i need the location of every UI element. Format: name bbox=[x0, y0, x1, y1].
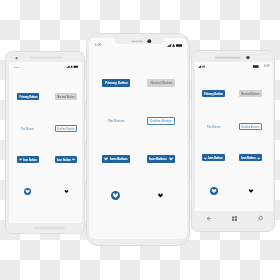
staticText: Outline Button bbox=[150, 119, 172, 123]
staticText: Primary Button bbox=[105, 81, 128, 85]
staticText: Icon Button bbox=[241, 156, 256, 160]
button[interactable]: Favorite bbox=[210, 187, 218, 195]
button[interactable]: Flat Button bbox=[202, 123, 225, 130]
staticText: Flat Button bbox=[108, 119, 125, 123]
button[interactable]: Outline Button bbox=[55, 125, 77, 132]
staticText: 6:00 bbox=[95, 43, 102, 47]
staticText: Icon Button bbox=[208, 156, 223, 160]
button[interactable]: Icon Button bbox=[55, 156, 77, 163]
button[interactable]: Outline Button bbox=[239, 123, 262, 130]
button[interactable]: Primary Button bbox=[102, 79, 130, 87]
button[interactable]: Favorite bbox=[24, 188, 31, 195]
button[interactable]: Icon Button bbox=[239, 154, 262, 161]
button[interactable]: Icon Button bbox=[202, 154, 225, 161]
staticText: Icon Button bbox=[149, 157, 167, 161]
button[interactable]: Flat Button bbox=[17, 125, 39, 132]
button[interactable]: Icon Button bbox=[147, 155, 175, 163]
button[interactable]: Icon Button bbox=[102, 155, 130, 163]
button[interactable]: Icon Button bbox=[17, 156, 39, 163]
button[interactable]: Like bbox=[156, 191, 165, 200]
staticText: 6:00 bbox=[14, 65, 19, 68]
button[interactable]: Outline Button bbox=[147, 117, 175, 125]
button[interactable]: Favorite bbox=[111, 191, 120, 200]
staticText: Icon Button bbox=[23, 158, 37, 161]
button[interactable]: Like bbox=[247, 187, 255, 195]
staticText: Primary Button bbox=[204, 92, 223, 96]
staticText: Flat Button bbox=[207, 125, 221, 129]
staticText: Primary Button bbox=[19, 95, 38, 98]
staticText: Outline Button bbox=[241, 125, 260, 129]
button[interactable]: System navigation bbox=[195, 211, 273, 229]
button[interactable]: Normal Button bbox=[239, 90, 262, 97]
staticText: Icon Button bbox=[57, 158, 71, 161]
staticText: Flat Button bbox=[21, 127, 35, 130]
button[interactable]: Primary Button bbox=[17, 93, 39, 100]
staticText: Icon Button bbox=[110, 157, 128, 161]
staticText: Normal Button bbox=[57, 95, 75, 98]
staticText: Normal Button bbox=[241, 92, 260, 96]
button[interactable]: Flat Button bbox=[102, 117, 130, 125]
staticText: 6:00 bbox=[264, 64, 270, 68]
button[interactable]: Normal Button bbox=[55, 93, 77, 100]
staticText: Normal Button bbox=[150, 81, 173, 85]
button[interactable]: Normal Button bbox=[147, 79, 175, 87]
staticText: Outline Button bbox=[57, 127, 75, 130]
button[interactable]: Primary Button bbox=[202, 90, 225, 97]
button[interactable]: Like bbox=[63, 188, 70, 195]
